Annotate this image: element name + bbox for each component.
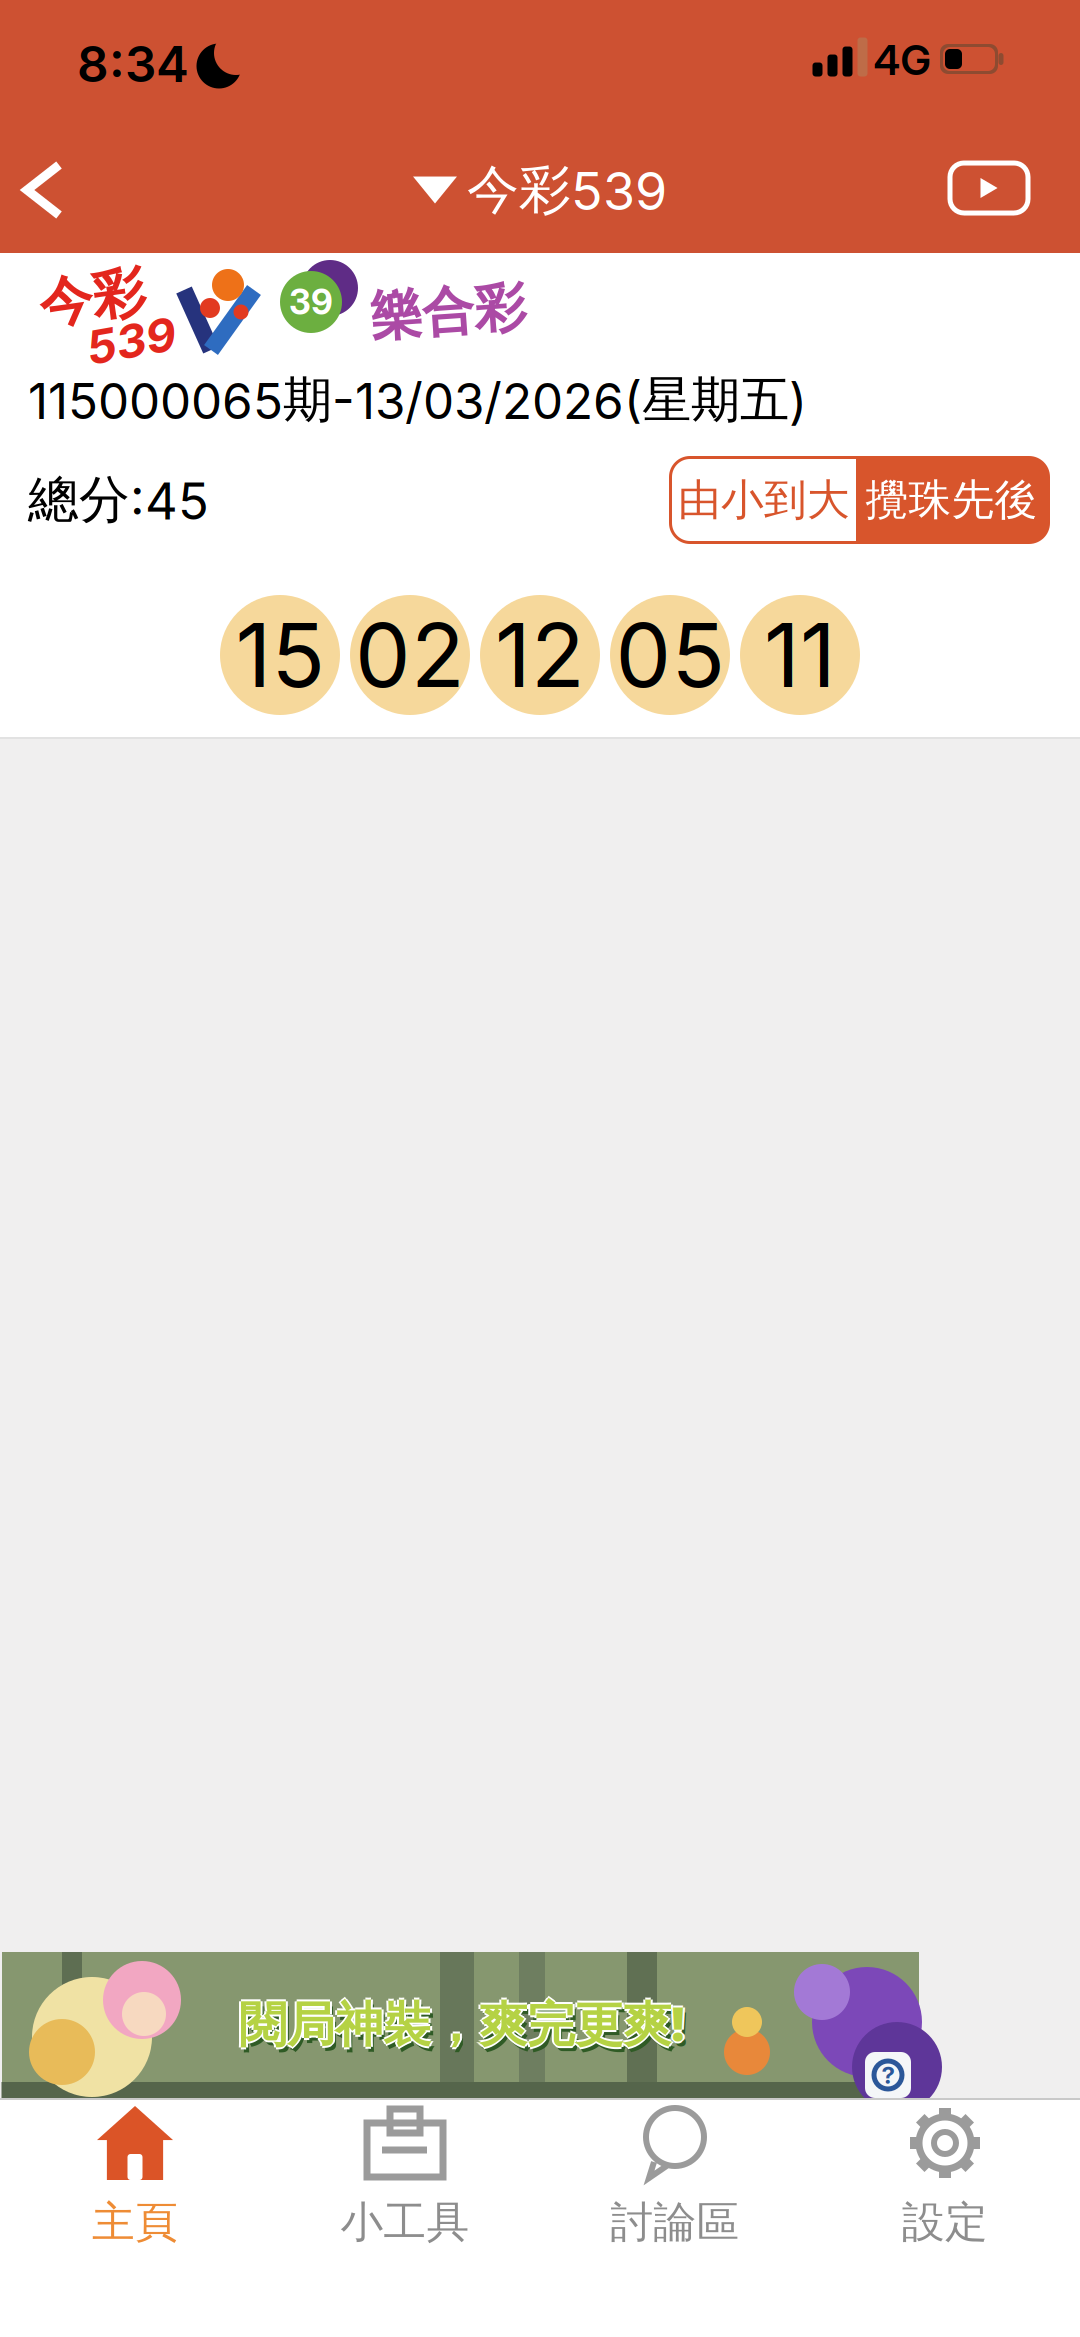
- button[interactable]: Advertisement: [2, 1952, 919, 2098]
- button[interactable]: Ad info: [865, 2052, 911, 2098]
- staticText: 樂合彩: [370, 280, 526, 344]
- staticText: 今彩539: [467, 157, 667, 223]
- staticText: 115000065期-13/03/2026(星期五): [28, 369, 807, 431]
- staticText: 討論區: [610, 2196, 739, 2248]
- button[interactable]: 小工具: [270, 2098, 540, 2337]
- button[interactable]: 攪珠先後: [856, 459, 1047, 541]
- staticText: 12: [495, 602, 585, 708]
- staticText: 8:34: [77, 34, 189, 94]
- button[interactable]: Live video: [950, 163, 1028, 213]
- button[interactable]: 設定: [810, 2098, 1080, 2337]
- staticText: 設定: [902, 2196, 988, 2248]
- staticText: 閱局神裝，爽完更爽!: [241, 1991, 687, 2055]
- button[interactable]: 討論區: [540, 2098, 810, 2337]
- staticText: 閱局神裝，爽完更爽!: [239, 1989, 685, 2053]
- staticText: 攪珠先後: [865, 474, 1037, 526]
- button[interactable]: 由小到大: [672, 459, 856, 541]
- staticText: 539: [86, 313, 176, 369]
- button[interactable]: 主頁: [0, 2098, 270, 2337]
- staticText: 閱局神裝，爽完更爽!: [237, 1991, 683, 2055]
- staticText: 閱局神裝，爽完更爽!: [239, 1991, 685, 2055]
- staticText: 02: [355, 602, 465, 708]
- staticText: 今彩: [39, 265, 145, 331]
- staticText: 39: [289, 281, 333, 323]
- staticText: 主頁: [92, 2196, 178, 2248]
- staticText: 15: [235, 602, 324, 708]
- staticText: ?: [881, 2060, 894, 2089]
- button[interactable]: 今彩539: [413, 157, 667, 223]
- staticText: 總分:45: [28, 468, 209, 532]
- staticText: 11: [764, 602, 836, 708]
- staticText: 4G: [873, 35, 930, 85]
- staticText: 由小到大: [678, 474, 850, 526]
- staticText: 小工具: [340, 2196, 469, 2248]
- button[interactable]: Back: [13, 151, 73, 229]
- staticText: 閱局神裝，爽完更爽!: [239, 1993, 685, 2057]
- staticText: 閱局神裝，爽完更爽!: [242, 1996, 688, 2060]
- staticText: 05: [615, 602, 724, 708]
